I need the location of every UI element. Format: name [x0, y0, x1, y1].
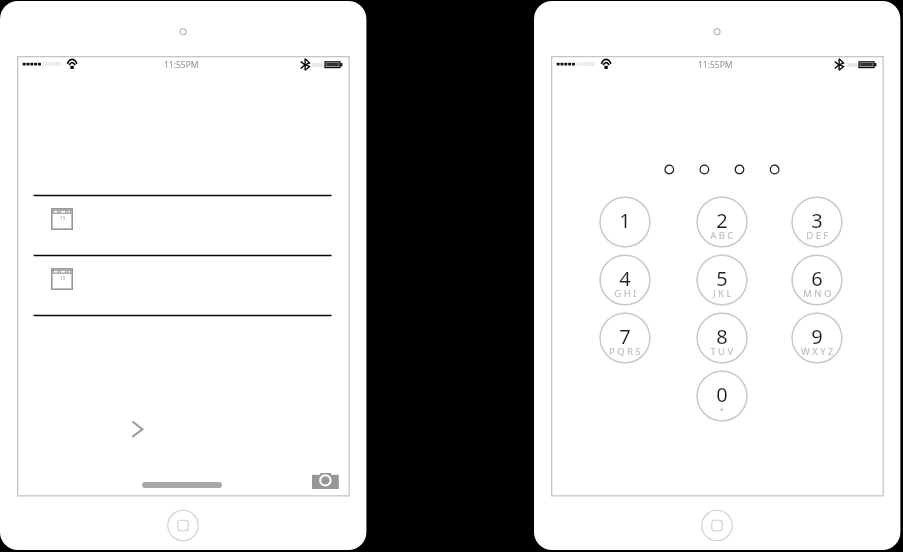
staticText: 11:55PM — [164, 59, 199, 71]
button[interactable]: 6 — [791, 254, 843, 306]
staticText: JKL — [713, 287, 734, 300]
staticText: 15 — [60, 275, 66, 281]
button[interactable]: 9 — [791, 312, 843, 364]
staticText: 98% — [846, 61, 858, 69]
button[interactable]: Window — [51, 268, 73, 290]
staticText: GHI — [614, 287, 639, 300]
staticText: 6 — [811, 265, 823, 292]
staticText: 5 — [716, 265, 728, 292]
staticText: CARRIER — [42, 61, 61, 67]
button[interactable]: Next — [127, 416, 149, 442]
button[interactable]: Window — [51, 208, 73, 230]
button[interactable]: 5 — [696, 254, 748, 306]
staticText: 1 — [619, 207, 631, 234]
staticText: 9 — [811, 323, 823, 350]
staticText: CARRIER — [576, 61, 595, 67]
staticText: PQRS — [609, 345, 643, 358]
button[interactable]: 0 — [696, 370, 748, 422]
staticText: MNO — [803, 287, 834, 300]
staticText: 8 — [716, 323, 728, 350]
button[interactable]: 1 — [599, 196, 651, 248]
staticText: 98% — [312, 61, 324, 69]
staticText: WXYZ — [801, 345, 836, 358]
button[interactable]: 7 — [599, 312, 651, 364]
staticText: 2 — [716, 207, 728, 234]
button[interactable]: Home — [168, 510, 198, 540]
button[interactable]: 8 — [696, 312, 748, 364]
button[interactable]: 2 — [696, 196, 748, 248]
button[interactable]: Camera — [312, 473, 339, 489]
staticText: + — [719, 403, 727, 416]
staticText: 15 — [60, 215, 66, 221]
button[interactable]: 4 — [599, 254, 651, 306]
staticText: 3 — [811, 207, 823, 234]
staticText: 0 — [716, 381, 728, 408]
staticText: TUV — [710, 345, 736, 358]
button[interactable]: Home — [702, 510, 732, 540]
staticText: 11:55PM — [698, 59, 733, 71]
staticText: 4 — [619, 265, 631, 292]
staticText: 7 — [619, 323, 631, 350]
staticText: ABC — [710, 229, 736, 242]
staticText: DEF — [806, 229, 831, 242]
button[interactable]: 3 — [791, 196, 843, 248]
